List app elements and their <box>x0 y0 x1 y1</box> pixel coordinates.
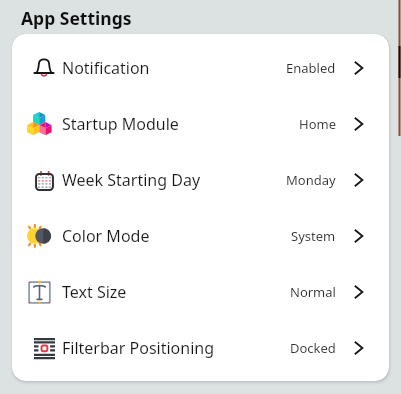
button[interactable]: Text Size <box>12 264 389 320</box>
button[interactable]: Week Starting Day <box>12 152 389 208</box>
staticText: System <box>291 227 336 245</box>
button[interactable]: Color Mode <box>12 208 389 264</box>
staticText: App Settings <box>21 6 132 30</box>
staticText: Normal <box>290 283 336 301</box>
button[interactable]: Filterbar Positioning <box>12 320 389 376</box>
staticText: Startup Module <box>62 113 179 135</box>
staticText: Docked <box>290 339 336 357</box>
button[interactable]: Notification <box>12 40 389 96</box>
staticText: Week Starting Day <box>62 169 201 191</box>
staticText: Filterbar Positioning <box>62 337 215 359</box>
staticText: Monday <box>286 171 336 189</box>
staticText: Enabled <box>286 59 336 77</box>
staticText: Notification <box>62 57 150 79</box>
staticText: Color Mode <box>62 225 150 247</box>
staticText: Text Size <box>62 281 127 303</box>
staticText: Home <box>299 115 336 133</box>
button[interactable]: Startup Module <box>12 96 389 152</box>
